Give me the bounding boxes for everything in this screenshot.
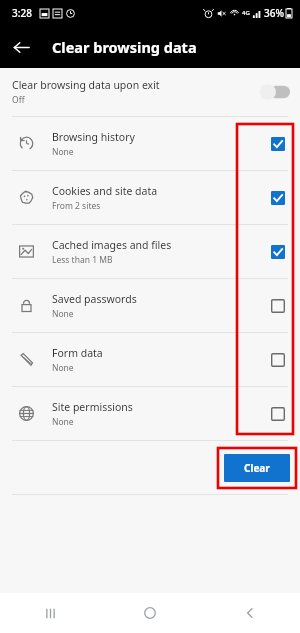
- button[interactable]: Recent apps: [20, 593, 80, 633]
- staticText: Clear browsing data upon exit: [12, 78, 160, 92]
- staticText: 4G: [242, 9, 250, 17]
- staticText: Browsing history: [52, 130, 135, 144]
- button[interactable]: Clear browsing data upon exit: [0, 68, 300, 116]
- button[interactable]: Cookies and site data: [0, 171, 300, 224]
- staticText: Site permissions: [52, 400, 133, 414]
- button[interactable]: Saved passwords: [0, 279, 300, 332]
- button[interactable]: Back: [220, 593, 280, 633]
- button[interactable]: [256, 387, 300, 440]
- staticText: Clear: [244, 461, 270, 475]
- button[interactable]: Navigate up: [6, 32, 36, 62]
- button[interactable]: Form data: [0, 333, 300, 386]
- staticText: 36%: [264, 6, 284, 20]
- button[interactable]: [256, 171, 300, 224]
- staticText: None: [52, 308, 74, 320]
- staticText: Cached images and files: [52, 238, 172, 252]
- button[interactable]: Cached images and files: [0, 225, 300, 278]
- button[interactable]: Browsing history: [0, 117, 300, 170]
- button[interactable]: Site permissions: [0, 387, 300, 440]
- button[interactable]: Home: [120, 593, 180, 633]
- button[interactable]: [256, 225, 300, 278]
- button[interactable]: Clear: [224, 454, 290, 482]
- staticText: None: [52, 146, 74, 158]
- staticText: Clear browsing data: [52, 37, 197, 57]
- staticText: Less than 1 MB: [52, 254, 113, 266]
- staticText: Cookies and site data: [52, 184, 158, 198]
- staticText: None: [52, 362, 74, 374]
- staticText: Saved passwords: [52, 292, 137, 306]
- staticText: 3:28: [12, 6, 32, 20]
- staticText: From 2 sites: [52, 200, 101, 212]
- staticText: Off: [12, 94, 25, 106]
- staticText: Form data: [52, 346, 103, 360]
- button[interactable]: [256, 333, 300, 386]
- staticText: None: [52, 416, 74, 428]
- button[interactable]: [256, 279, 300, 332]
- button[interactable]: [256, 117, 300, 170]
